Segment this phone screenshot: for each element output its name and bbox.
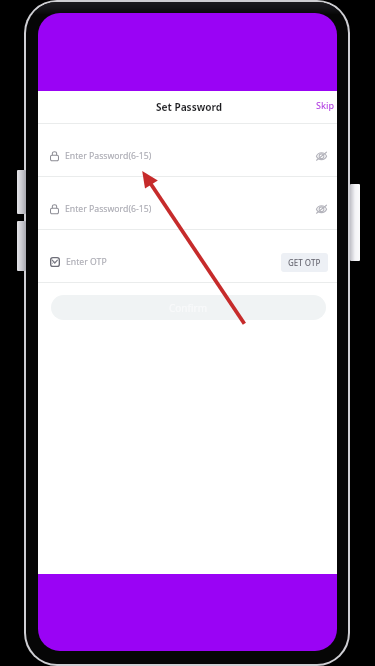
button[interactable]: Toggle password visibility — [313, 201, 330, 217]
staticText: Enter OTP — [66, 256, 107, 268]
button[interactable]: Enter Password(6-15) — [38, 176, 337, 229]
button[interactable]: Skip — [308, 91, 337, 119]
staticText: Enter Password(6-15) — [65, 150, 152, 162]
staticText: Enter Password(6-15) — [65, 203, 152, 215]
other: Volume down — [17, 221, 26, 271]
button[interactable]: GET OTP — [281, 253, 328, 272]
staticText: GET OTP — [288, 257, 321, 268]
button[interactable]: Toggle password visibility — [313, 148, 330, 164]
staticText: Set Password — [156, 100, 223, 114]
button[interactable]: Enter Password(6-15) — [38, 123, 337, 176]
other: Power — [350, 184, 360, 261]
button[interactable]: Confirm — [51, 295, 326, 320]
staticText: Skip — [316, 99, 334, 111]
other: Volume up — [17, 170, 26, 214]
